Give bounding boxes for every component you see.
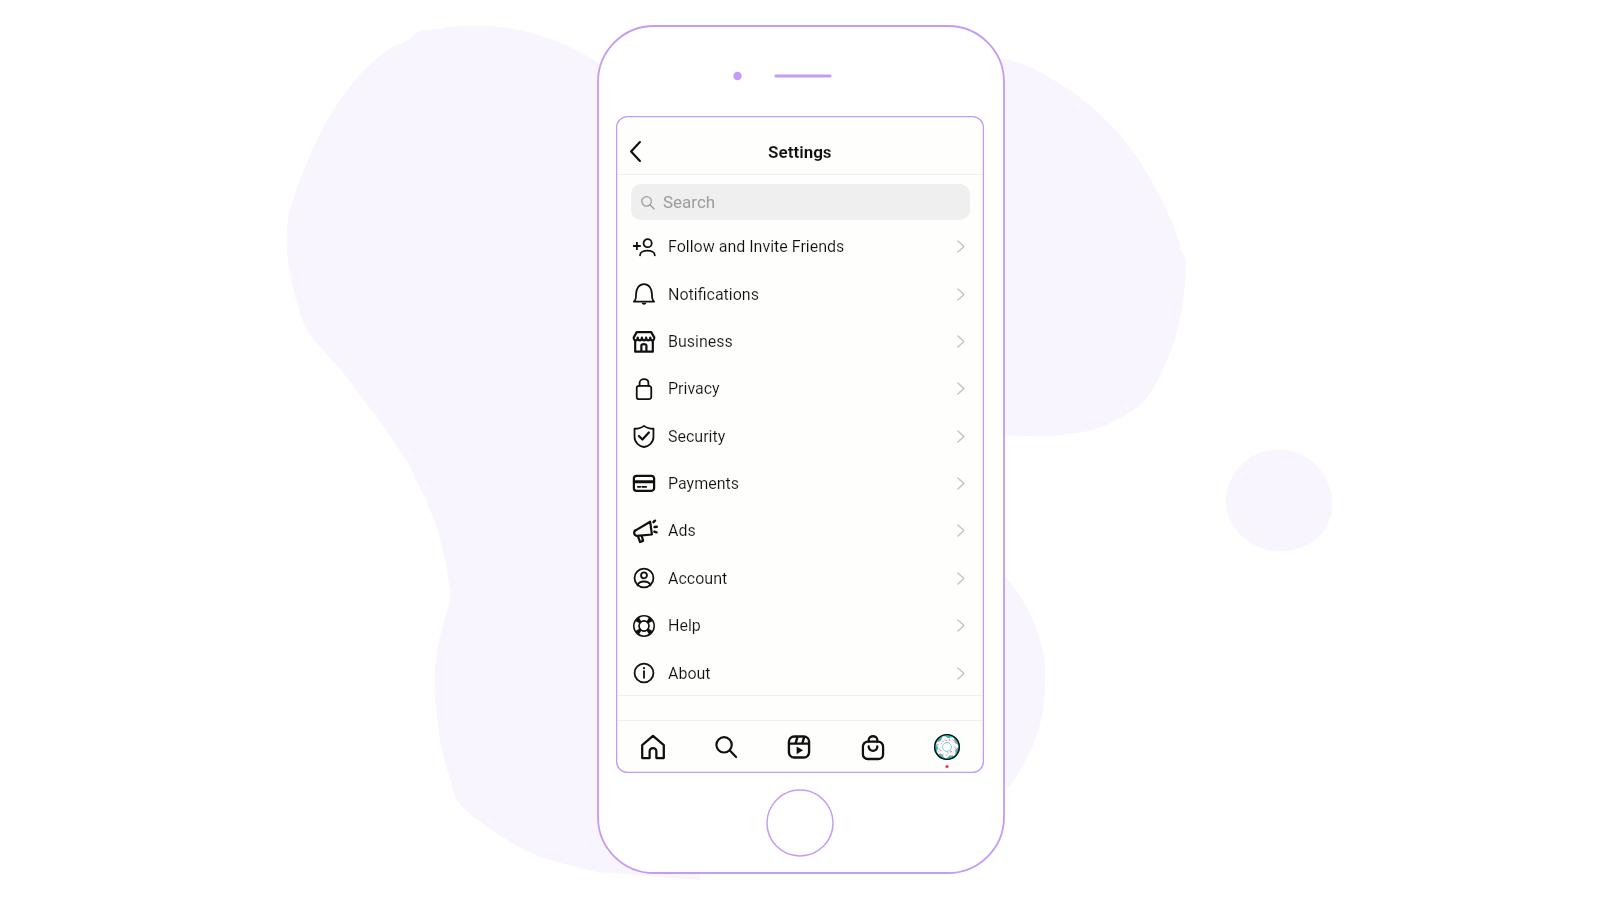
staticText: Settings (768, 142, 832, 162)
staticText: Follow and Invite Friends (668, 237, 845, 256)
staticText: Ads (668, 521, 696, 540)
button[interactable]: Search (689, 721, 762, 773)
button[interactable]: Search (631, 184, 970, 220)
button[interactable]: Payments (616, 460, 984, 507)
staticText: Account (668, 569, 728, 588)
button[interactable]: About (616, 649, 984, 697)
button[interactable]: Notifications (616, 270, 984, 318)
button[interactable]: Privacy (616, 365, 984, 412)
staticText: Business (668, 332, 733, 351)
button[interactable]: Profile (910, 721, 984, 773)
staticText: Notifications (668, 285, 759, 304)
staticText: Security (668, 427, 726, 446)
staticText: About (668, 664, 711, 683)
staticText: Payments (668, 474, 740, 493)
button[interactable]: Home (616, 721, 689, 773)
button[interactable]: Back (616, 132, 655, 171)
staticText: Privacy (668, 379, 720, 398)
button[interactable]: Follow and Invite Friends (616, 223, 984, 270)
button[interactable]: Reels (762, 721, 836, 773)
button[interactable]: Security (616, 412, 984, 460)
button[interactable]: Ads (616, 507, 984, 554)
button[interactable]: Business (616, 318, 984, 365)
button[interactable]: Account (616, 554, 984, 602)
button[interactable]: Help (616, 602, 984, 649)
button[interactable]: Shop (836, 721, 910, 773)
staticText: Help (668, 616, 701, 635)
staticText: Search (663, 192, 716, 212)
